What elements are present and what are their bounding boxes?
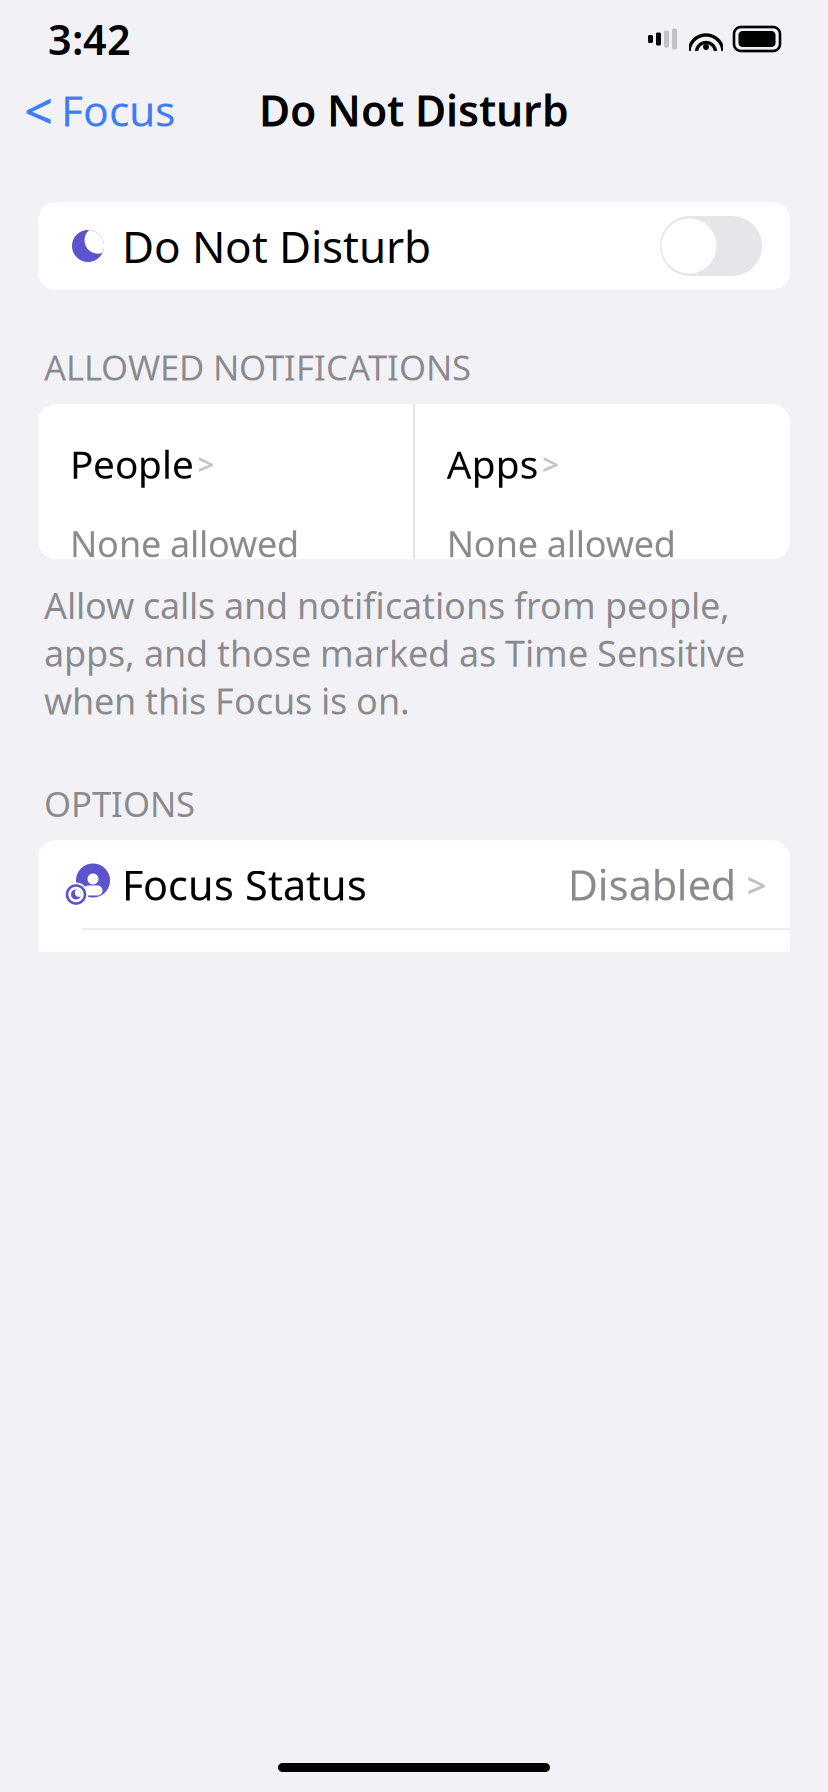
staticText: Disabled xyxy=(568,857,736,912)
staticText: > xyxy=(198,444,215,483)
button[interactable]: Home Screen xyxy=(38,930,790,1018)
staticText: Focus Status xyxy=(122,857,367,912)
staticText: None allowed xyxy=(70,519,299,567)
staticText: Do Not Disturb xyxy=(259,82,569,138)
button[interactable]: Do Not Disturb xyxy=(660,216,762,276)
staticText: OPTIONS xyxy=(44,780,195,826)
staticText: 3:42 xyxy=(48,12,131,66)
staticText: ALLOWED NOTIFICATIONS xyxy=(44,344,471,390)
staticText: < xyxy=(24,76,53,144)
button[interactable]: People xyxy=(38,404,413,559)
button[interactable]: Focus Status xyxy=(38,840,790,928)
button[interactable]: Apps xyxy=(415,404,790,559)
staticText: People xyxy=(70,438,194,489)
staticText: None allowed xyxy=(447,519,676,567)
staticText: Focus xyxy=(61,82,175,138)
button[interactable]: < xyxy=(0,81,199,139)
staticText: Home Screen xyxy=(122,946,382,1001)
staticText: > xyxy=(542,444,559,483)
staticText: > xyxy=(747,861,767,907)
staticText: Apps xyxy=(447,438,539,489)
staticText: Do Not Disturb xyxy=(122,217,431,275)
staticText: Allow calls and notifications from peopl… xyxy=(44,581,745,724)
